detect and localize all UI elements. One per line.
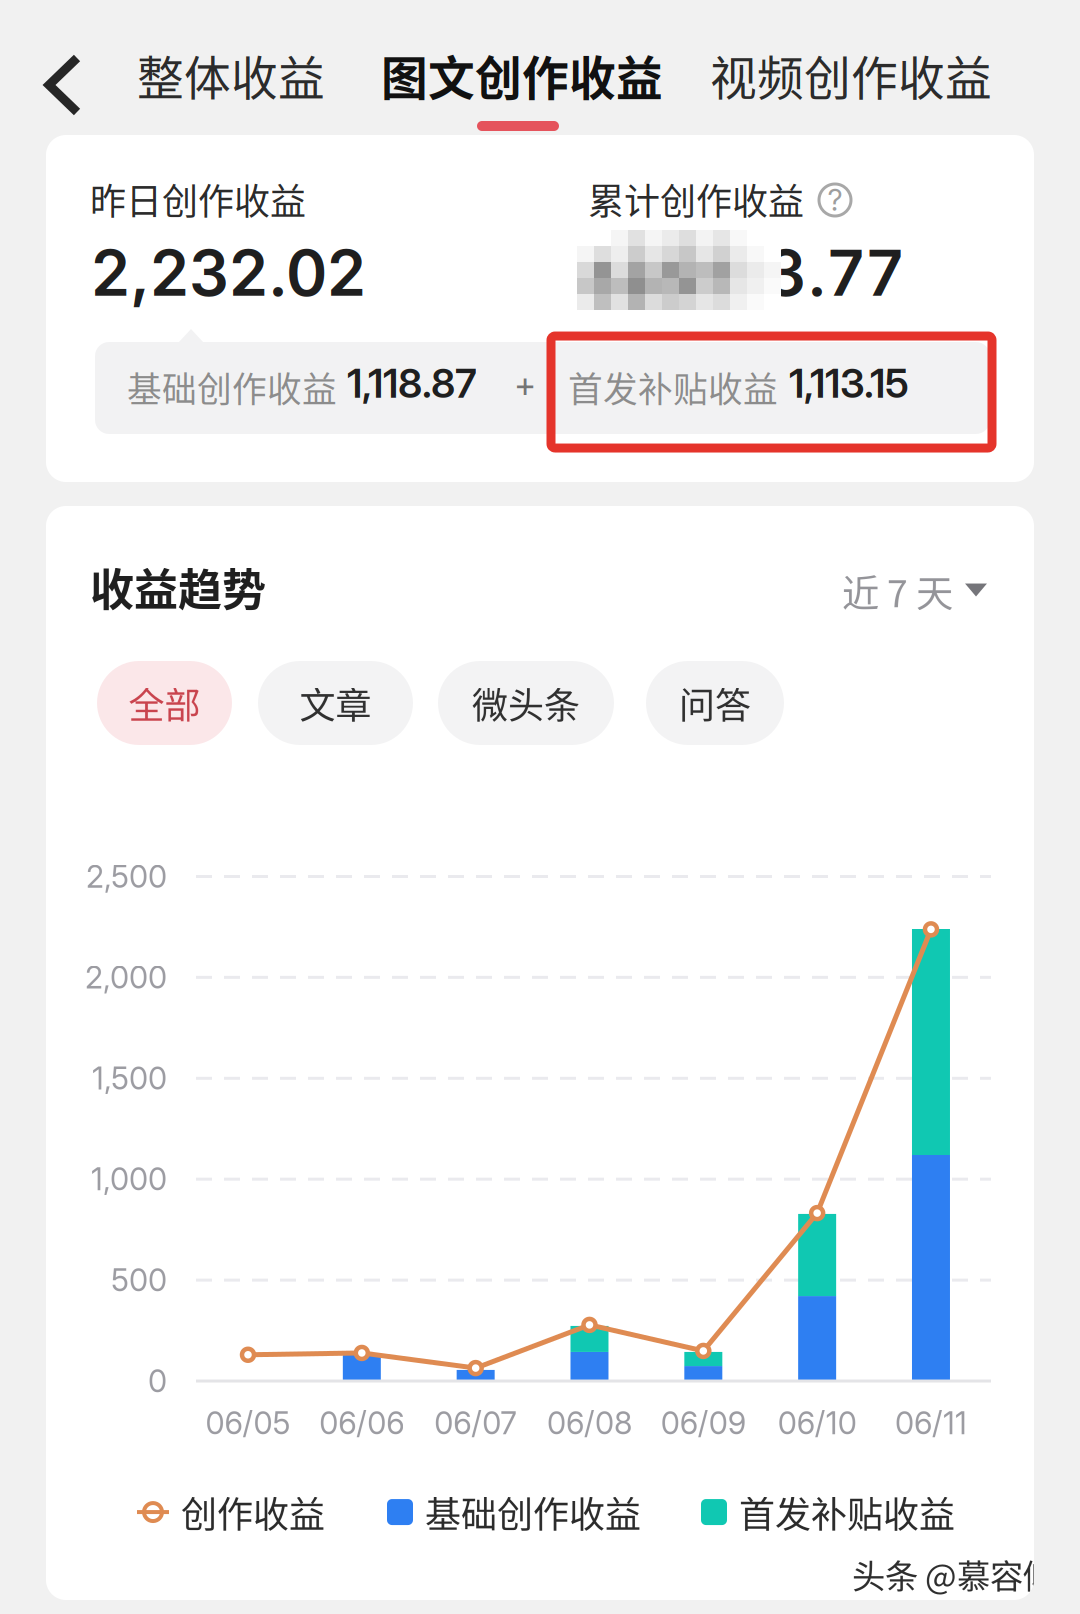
staticText: 近 7 天 <box>842 564 953 618</box>
staticText: 1,500 <box>92 1060 167 1097</box>
staticText: 06/05 <box>205 1404 290 1441</box>
staticText: 整体收益 <box>137 41 325 109</box>
staticText: 基础创作收益 <box>127 362 337 412</box>
staticText: 2,232.02 <box>91 235 366 311</box>
button[interactable]: Back <box>26 35 100 135</box>
staticText: 500 <box>111 1261 167 1299</box>
staticText: 文章 <box>299 677 371 729</box>
button[interactable]: 问答 <box>646 661 784 745</box>
staticText: + <box>514 364 536 406</box>
staticText: ? <box>827 182 842 218</box>
staticText: 微头条 <box>472 677 580 729</box>
button[interactable]: 视频创作收益 <box>695 19 1007 131</box>
button[interactable]: 文章 <box>258 661 413 745</box>
staticText: 3.77 <box>766 235 903 311</box>
staticText: 头条 @慕容倾川 <box>852 1550 1080 1598</box>
staticText: 1,113.15 <box>789 359 909 407</box>
button[interactable]: 图文创作收益 <box>366 19 678 131</box>
staticText: 06/10 <box>778 1404 857 1441</box>
staticText: 首发补贴收益 <box>739 1486 955 1538</box>
staticText: 1,000 <box>91 1161 167 1198</box>
staticText: 06/06 <box>319 1404 404 1441</box>
staticText: 全部 <box>128 677 200 729</box>
button[interactable]: 整体收益 <box>122 19 340 131</box>
staticText: 06/08 <box>547 1404 632 1441</box>
staticText: 视频创作收益 <box>710 41 992 109</box>
staticText: 昨日创作收益 <box>90 173 306 225</box>
staticText: 基础创作收益 <box>425 1486 641 1538</box>
staticText: 0 <box>148 1362 167 1399</box>
staticText: 累计创作收益 <box>588 173 804 225</box>
staticText: 收益趋势 <box>90 555 266 619</box>
button[interactable]: 全部 <box>97 661 232 745</box>
staticText: 1,118.87 <box>347 359 477 407</box>
staticText: 2,000 <box>85 959 167 996</box>
button[interactable]: 近 7 天 <box>46 568 987 614</box>
staticText: 06/07 <box>434 1404 517 1441</box>
staticText: 首发补贴收益 <box>568 362 778 412</box>
staticText: 06/11 <box>895 1404 967 1441</box>
staticText: 06/09 <box>661 1404 746 1441</box>
staticText: 图文创作收益 <box>381 41 663 109</box>
staticText: 问答 <box>679 677 751 729</box>
staticText: 创作收益 <box>181 1486 325 1538</box>
button[interactable]: 微头条 <box>438 661 614 745</box>
staticText: 2,500 <box>86 858 167 895</box>
